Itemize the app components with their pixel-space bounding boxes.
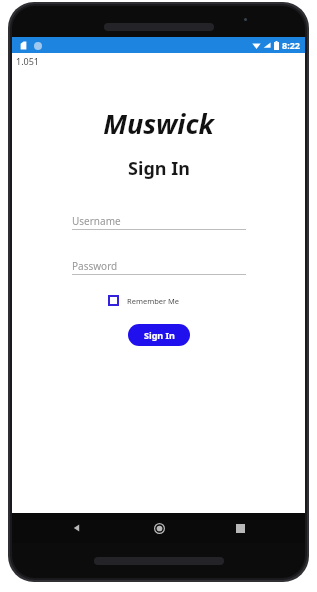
staticText: Sign In: [128, 156, 190, 181]
button[interactable]: Remember Me: [72, 295, 246, 306]
staticText: Sign In: [144, 329, 175, 341]
button[interactable]: Home: [142, 513, 176, 543]
staticText: 1.051: [16, 55, 40, 67]
button[interactable]: Username: [72, 213, 246, 229]
staticText: Password: [72, 259, 118, 273]
button[interactable]: Recent apps: [223, 513, 257, 543]
button[interactable]: Password: [72, 258, 246, 274]
button[interactable]: Back: [60, 513, 94, 543]
staticText: Remember Me: [127, 296, 180, 306]
staticText: 8:22: [282, 39, 300, 51]
staticText: Username: [72, 214, 121, 228]
button[interactable]: Sign In: [128, 324, 190, 346]
staticText: Muswick: [103, 105, 214, 142]
